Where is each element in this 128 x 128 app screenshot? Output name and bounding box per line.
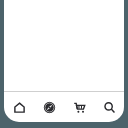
button[interactable]: Explore: [34, 92, 64, 122]
button[interactable]: Cart: [64, 92, 94, 122]
button[interactable]: Search: [94, 92, 124, 122]
button[interactable]: Home: [4, 92, 34, 122]
